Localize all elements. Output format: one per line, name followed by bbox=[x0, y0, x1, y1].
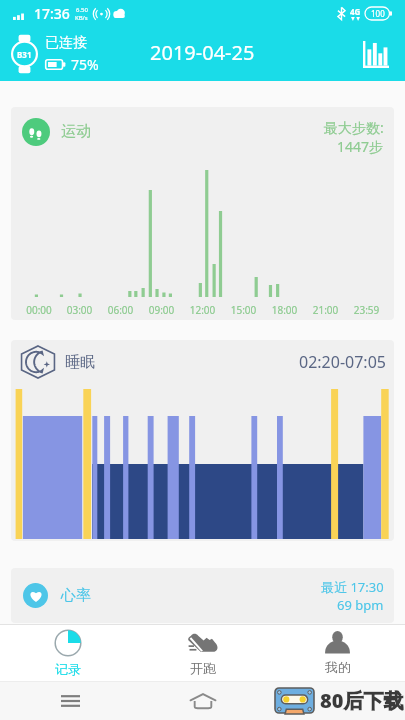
button[interactable]: 运动 bbox=[11, 107, 394, 320]
button[interactable]: 开跑 bbox=[135, 625, 270, 681]
staticText: B31 bbox=[17, 49, 32, 60]
staticText: 80后下载 bbox=[320, 687, 404, 714]
staticText: 我的 bbox=[325, 659, 351, 675]
button[interactable]: Home bbox=[183, 681, 223, 720]
staticText: 开跑 bbox=[190, 660, 216, 676]
staticText: 21:00 bbox=[305, 303, 346, 317]
button[interactable]: 心率 bbox=[11, 568, 394, 623]
staticText: 6.50 bbox=[76, 6, 88, 14]
staticText: 最近 17:30 bbox=[321, 578, 384, 596]
staticText: 12:00 bbox=[182, 303, 223, 317]
button[interactable]: 睡眠 bbox=[11, 340, 394, 541]
staticText: 100 bbox=[371, 8, 385, 19]
button[interactable]: 记录 bbox=[0, 625, 135, 681]
staticText: 09:00 bbox=[141, 303, 182, 317]
staticText: 已连接 bbox=[45, 34, 87, 52]
button[interactable]: Recent apps bbox=[50, 681, 90, 720]
staticText: 03:00 bbox=[59, 303, 100, 317]
staticText: 睡眠 bbox=[65, 353, 95, 372]
staticText: 4G bbox=[350, 6, 361, 17]
staticText: 心率 bbox=[61, 586, 91, 605]
staticText: KB/s bbox=[75, 14, 88, 22]
button[interactable]: Statistics bbox=[361, 39, 391, 69]
staticText: 1447步 bbox=[337, 137, 384, 156]
staticText: 23:59 bbox=[346, 303, 387, 317]
staticText: 记录 bbox=[55, 661, 81, 677]
staticText: 00:00 bbox=[19, 303, 59, 317]
staticText: 69 bpm bbox=[337, 596, 384, 614]
staticText: 06:00 bbox=[100, 303, 141, 317]
button[interactable]: 我的 bbox=[270, 625, 405, 681]
staticText: 运动 bbox=[61, 122, 91, 141]
staticText: 02:20-07:05 bbox=[299, 351, 386, 373]
staticText: 最大步数: bbox=[324, 118, 384, 137]
staticText: 75% bbox=[71, 55, 99, 74]
staticText: 18:00 bbox=[264, 303, 305, 317]
staticText: 15:00 bbox=[223, 303, 264, 317]
staticText: 17:36 bbox=[34, 4, 70, 23]
staticText: 2019-04-25 bbox=[150, 39, 255, 66]
